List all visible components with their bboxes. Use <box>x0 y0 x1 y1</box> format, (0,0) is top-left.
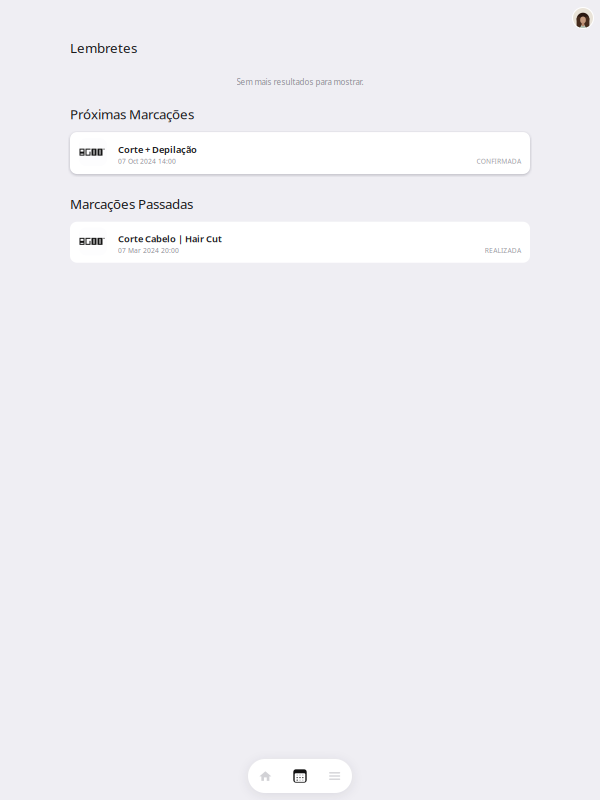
staticText: Corte Cabelo | Hair Cut <box>118 232 222 245</box>
staticText: Sem mais resultados para mostrar. <box>236 77 363 87</box>
staticText: Corte + Depilação <box>118 143 197 156</box>
staticText: Lembretes <box>70 39 137 57</box>
button[interactable]: Menu <box>317 759 352 793</box>
button[interactable]: Corte + Depilação <box>70 132 530 174</box>
staticText: Próximas Marcações <box>70 105 194 123</box>
button[interactable]: Profile <box>572 7 594 29</box>
button[interactable]: Appointments <box>283 759 317 793</box>
staticText: Marcações Passadas <box>70 195 193 213</box>
button[interactable]: Home <box>248 759 283 793</box>
staticText: CONFIRMADA <box>476 157 521 166</box>
button[interactable]: Corte Cabelo | Hair Cut <box>70 222 530 263</box>
staticText: 07 Mar 2024 20:00 <box>118 246 179 255</box>
staticText: REALIZADA <box>485 246 521 255</box>
staticText: 07 Oct 2024 14:00 <box>118 157 176 166</box>
